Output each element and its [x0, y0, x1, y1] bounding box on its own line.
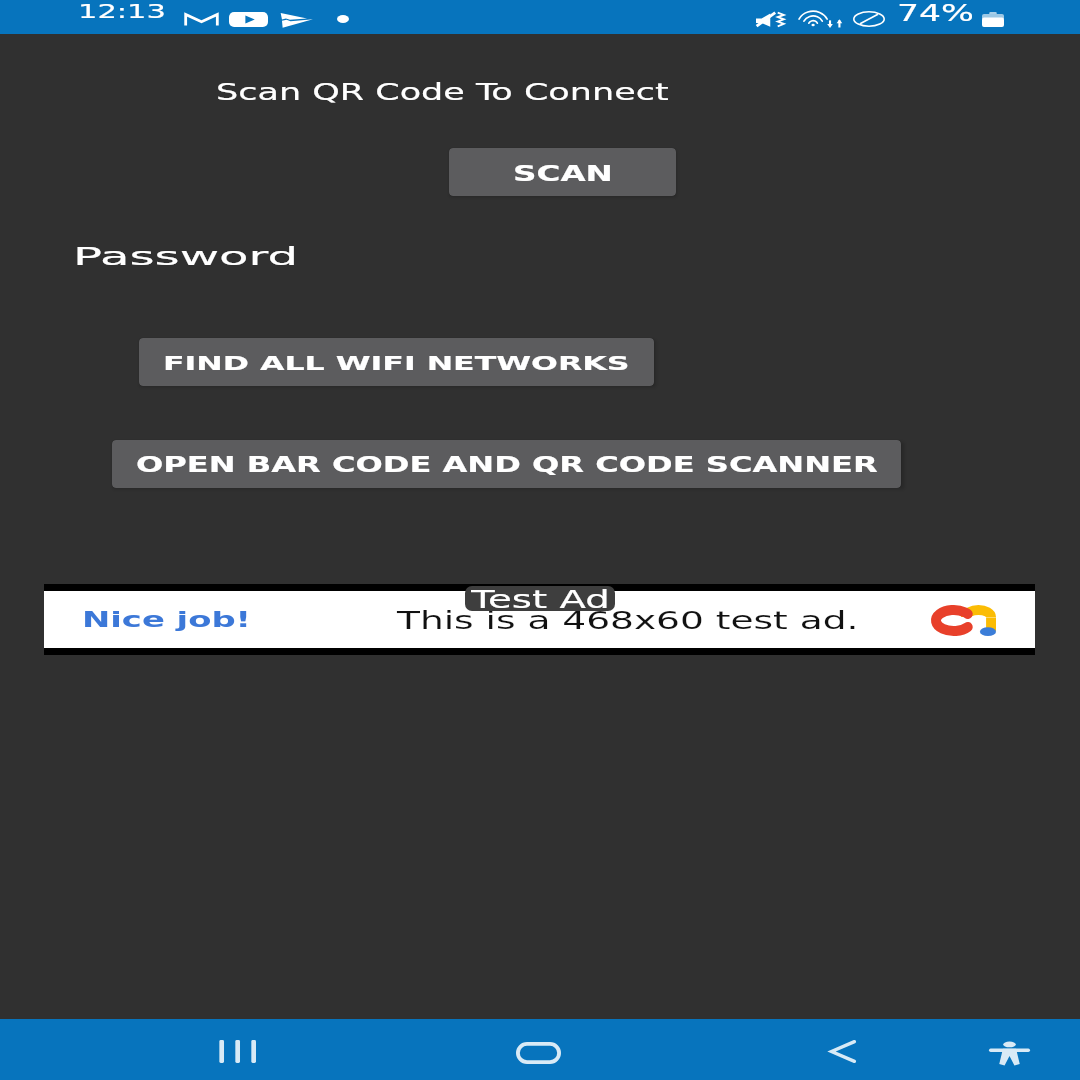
button[interactable]: Nice job!	[44, 591, 1035, 648]
button[interactable]: Back	[782, 1019, 902, 1080]
button[interactable]: Home	[478, 1019, 598, 1080]
staticText: This is a 468x60 test ad.	[397, 607, 859, 635]
staticText: Scan QR Code To Connect	[216, 79, 669, 106]
staticText: OPEN BAR CODE AND QR CODE SCANNER	[136, 453, 878, 476]
staticText: 12:13	[78, 0, 166, 22]
button[interactable]: SCAN	[449, 148, 676, 196]
staticText: SCAN	[513, 162, 613, 186]
button[interactable]: Recents	[176, 1019, 296, 1080]
button[interactable]: Accessibility	[949, 1019, 1069, 1080]
staticText: Test Ad	[471, 585, 610, 612]
staticText: Nice job!	[82, 607, 252, 632]
staticText: 74%	[897, 0, 974, 22]
staticText: Password	[73, 241, 299, 267]
button[interactable]: OPEN BAR CODE AND QR CODE SCANNER	[112, 440, 901, 488]
button[interactable]: FIND ALL WIFI NETWORKS	[139, 338, 654, 386]
staticText: FIND ALL WIFI NETWORKS	[163, 352, 630, 375]
